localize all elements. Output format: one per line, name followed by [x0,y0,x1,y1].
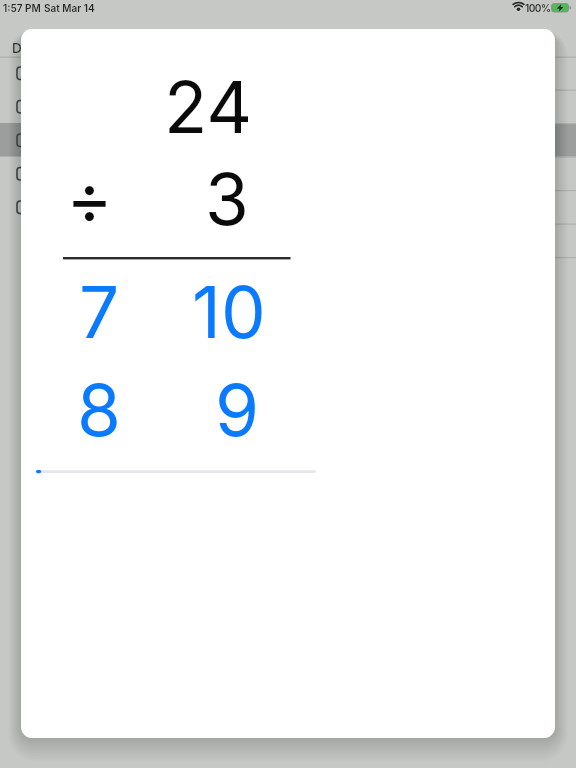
staticText: 10 [192,269,266,355]
button[interactable]: 9 [182,366,292,454]
staticText: 24 [164,64,253,144]
staticText: 8 [77,367,121,453]
staticText: D [12,40,22,56]
staticText: 100% [525,2,551,14]
button[interactable]: 7 [44,268,154,356]
button[interactable]: 10 [174,268,284,356]
staticText: ÷ [66,155,113,235]
staticText: 3 [205,156,249,236]
button[interactable]: 8 [44,366,154,454]
staticText: 9 [215,367,260,453]
staticText: 1:57 PM [3,2,41,14]
staticText: 7 [79,269,120,355]
staticText: Sat Mar 14 [44,2,95,14]
